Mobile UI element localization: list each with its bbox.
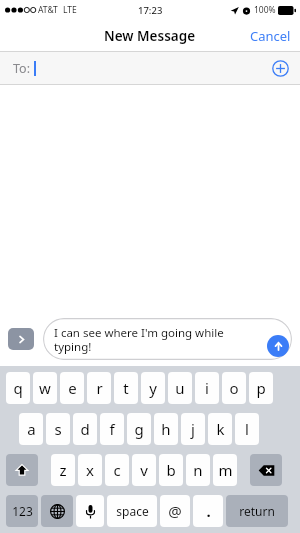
button[interactable]: q — [6, 372, 30, 404]
button[interactable]: Backspace — [250, 454, 282, 486]
staticText: z — [59, 460, 67, 480]
staticText: n — [193, 460, 203, 480]
button[interactable]: Cancel — [247, 24, 294, 48]
button[interactable]: Send — [267, 335, 289, 357]
staticText: @ — [168, 501, 182, 521]
staticText: v — [140, 460, 148, 480]
button[interactable]: . — [193, 495, 223, 527]
staticText: o — [229, 378, 239, 398]
staticText: u — [175, 378, 185, 398]
button[interactable]: Expand — [8, 328, 34, 350]
staticText: l — [245, 419, 249, 439]
staticText: return — [239, 503, 275, 519]
staticText: space — [116, 503, 149, 519]
button[interactable]: f — [100, 413, 124, 445]
staticText: New Message — [104, 27, 196, 45]
staticText: LTE — [63, 4, 77, 16]
button[interactable]: c — [105, 454, 129, 486]
button[interactable]: space — [107, 495, 157, 527]
staticText: . — [206, 501, 211, 521]
button[interactable]: s — [46, 413, 70, 445]
staticText: g — [134, 419, 144, 439]
staticText: 123 — [12, 503, 33, 519]
button[interactable]: To: — [0, 52, 300, 84]
button[interactable]: i — [195, 372, 219, 404]
button[interactable]: 123 — [6, 495, 38, 527]
staticText: q — [13, 378, 23, 398]
button[interactable]: x — [78, 454, 102, 486]
staticText: p — [256, 378, 266, 398]
staticText: y — [149, 378, 157, 398]
button[interactable]: @ — [160, 495, 190, 527]
button[interactable]: h — [154, 413, 178, 445]
staticText: r — [96, 378, 103, 398]
button[interactable]: e — [60, 372, 84, 404]
staticText: d — [80, 419, 90, 439]
staticText: a — [27, 419, 36, 439]
button[interactable]: I can see where I'm going while typing! — [43, 318, 292, 360]
staticText: Cancel — [250, 27, 291, 45]
button[interactable]: z — [51, 454, 75, 486]
button[interactable]: Shift — [6, 454, 38, 486]
staticText: w — [39, 378, 51, 398]
staticText: i — [205, 378, 209, 398]
button[interactable]: t — [114, 372, 138, 404]
button[interactable]: d — [73, 413, 97, 445]
button[interactable]: u — [168, 372, 192, 404]
button[interactable]: w — [33, 372, 57, 404]
staticText: t — [123, 378, 129, 398]
staticText: m — [218, 460, 233, 480]
button[interactable]: m — [213, 454, 237, 486]
button[interactable]: j — [181, 413, 205, 445]
button[interactable]: p — [249, 372, 273, 404]
staticText: I can see where I'm going while typing! — [54, 325, 262, 354]
button[interactable]: Dictate — [76, 495, 104, 527]
button[interactable]: o — [222, 372, 246, 404]
staticText: j — [191, 419, 195, 439]
staticText: k — [216, 419, 225, 439]
staticText: c — [113, 460, 121, 480]
staticText: 17:23 — [138, 4, 163, 17]
button[interactable]: Add contact — [270, 58, 290, 78]
staticText: To: — [13, 60, 30, 77]
button[interactable]: a — [19, 413, 43, 445]
staticText: AT&T — [38, 4, 58, 16]
button[interactable]: v — [132, 454, 156, 486]
button[interactable]: k — [208, 413, 232, 445]
staticText: h — [161, 419, 171, 439]
staticText: f — [109, 419, 115, 439]
button[interactable]: r — [87, 372, 111, 404]
staticText: e — [68, 378, 77, 398]
staticText: 100% — [254, 4, 276, 16]
button[interactable]: g — [127, 413, 151, 445]
staticText: b — [166, 460, 176, 480]
button[interactable]: return — [226, 495, 288, 527]
button[interactable]: Change keyboard — [41, 495, 73, 527]
button[interactable]: b — [159, 454, 183, 486]
button[interactable]: n — [186, 454, 210, 486]
button[interactable]: l — [235, 413, 259, 445]
staticText: x — [86, 460, 94, 480]
button[interactable]: y — [141, 372, 165, 404]
staticText: s — [54, 419, 62, 439]
